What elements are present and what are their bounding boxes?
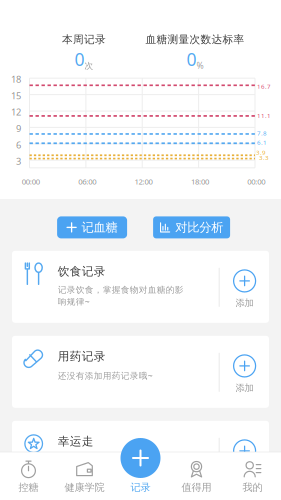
staticText: 00:00 — [22, 176, 40, 187]
staticText: 00:00 — [247, 176, 265, 187]
button[interactable]: 记血糖 — [57, 216, 127, 238]
staticText: 16.7 — [257, 82, 271, 91]
staticText: 15 — [11, 89, 21, 102]
button[interactable]: 值得用 — [168, 456, 224, 498]
staticText: 健康学院 — [64, 481, 104, 494]
staticText: 幸运走 — [58, 434, 94, 449]
staticText: 记录 — [130, 481, 150, 494]
staticText: 添加 — [236, 382, 254, 394]
button[interactable]: 添加 — [216, 338, 274, 410]
staticText: 我的 — [242, 481, 262, 494]
button[interactable]: 对比分析 — [153, 216, 230, 238]
staticText: % — [196, 59, 203, 71]
button[interactable]: 添加 — [216, 253, 274, 325]
button[interactable]: 我的 — [224, 456, 280, 498]
staticText: 记血糖 — [82, 220, 118, 235]
staticText: 3.9 — [256, 148, 266, 157]
staticText: 对比分析 — [175, 220, 223, 235]
staticText: 还没有添加用药记录哦~ — [58, 369, 153, 381]
button[interactable]: 记录 — [120, 438, 160, 478]
staticText: 0 — [74, 47, 84, 71]
button[interactable]: 记录 — [112, 456, 168, 498]
staticText: 本周记录 — [62, 33, 106, 46]
staticText: 记录饮食，掌握食物对血糖的影响规律~ — [58, 284, 184, 307]
staticText: 6.1 — [257, 138, 267, 146]
staticText: 7.8 — [257, 129, 267, 137]
staticText: 值得用 — [181, 481, 211, 494]
staticText: 饮食记录 — [58, 264, 106, 279]
button[interactable]: 健康学院 — [56, 456, 112, 498]
staticText: 18:00 — [191, 176, 209, 187]
staticText: 添加 — [236, 297, 254, 309]
staticText: 06:00 — [78, 176, 96, 187]
staticText: 次 — [84, 60, 93, 71]
staticText: 12:00 — [135, 176, 153, 187]
staticText: 控糖 — [18, 481, 38, 494]
staticText: 用药记录 — [58, 349, 106, 364]
button[interactable]: 控糖 — [0, 456, 56, 498]
staticText: 3.3 — [259, 153, 269, 162]
staticText: 9 — [16, 122, 21, 135]
button[interactable]: 添加 — [216, 423, 274, 495]
staticText: 12 — [11, 106, 21, 118]
staticText: 3 — [16, 155, 21, 167]
staticText: 添加 — [236, 467, 254, 479]
staticText: 血糖测量次数达标率 — [145, 33, 244, 46]
staticText: 11.1 — [257, 111, 271, 120]
staticText: 18 — [11, 73, 21, 85]
staticText: 0 — [186, 47, 196, 71]
staticText: 6 — [16, 138, 21, 151]
